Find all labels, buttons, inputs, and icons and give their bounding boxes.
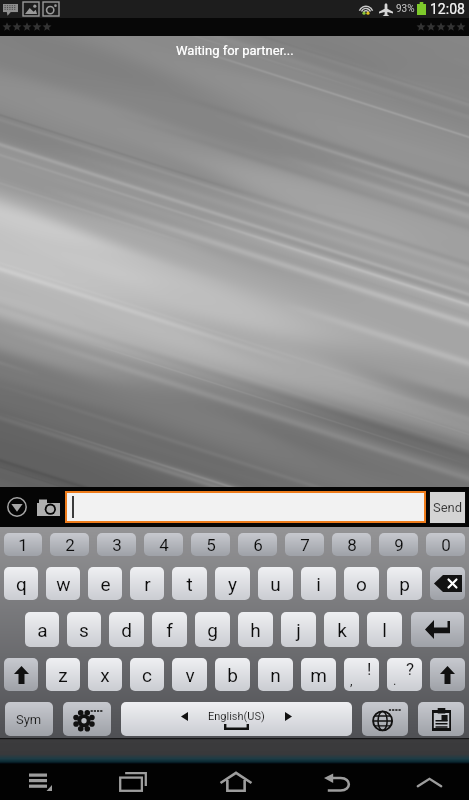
button[interactable]: 8 xyxy=(332,533,371,556)
staticText: a xyxy=(37,619,48,641)
button[interactable]: Home xyxy=(186,764,286,800)
button[interactable]: Space xyxy=(121,702,352,736)
staticText: q xyxy=(16,573,27,595)
staticText: 3 xyxy=(112,535,122,555)
staticText: 1 xyxy=(18,535,28,555)
staticText: p xyxy=(399,573,410,595)
button[interactable]: 1 xyxy=(4,533,42,556)
button[interactable]: Hide keyboard xyxy=(390,764,469,800)
button[interactable] xyxy=(67,493,424,521)
button[interactable]: g xyxy=(195,612,230,647)
staticText: o xyxy=(356,573,367,595)
button[interactable]: j xyxy=(281,612,316,647)
staticText: j xyxy=(296,619,301,641)
staticText: ? xyxy=(406,659,415,679)
staticText: w xyxy=(56,573,71,595)
staticText: v xyxy=(185,664,195,686)
button[interactable]: e xyxy=(88,567,122,600)
button[interactable]: 6 xyxy=(238,533,277,556)
button[interactable]: u xyxy=(258,567,293,600)
button[interactable]: v xyxy=(172,658,207,691)
staticText: 8 xyxy=(347,535,357,555)
button[interactable]: Send xyxy=(430,492,465,523)
staticText: g xyxy=(207,619,218,641)
button[interactable]: m xyxy=(301,658,336,691)
button[interactable]: x xyxy=(88,658,122,691)
staticText: i xyxy=(316,573,321,595)
button[interactable]: f xyxy=(152,612,187,647)
button[interactable]: p xyxy=(387,567,422,600)
staticText: 9 xyxy=(394,535,404,555)
staticText: m xyxy=(310,664,327,686)
staticText: r xyxy=(144,573,151,595)
button[interactable]: 7 xyxy=(285,533,324,556)
button[interactable]: Menu xyxy=(0,764,80,800)
button[interactable]: Camera xyxy=(36,490,61,524)
button[interactable]: s xyxy=(67,612,101,647)
button[interactable]: c xyxy=(130,658,164,691)
button[interactable]: Change language xyxy=(362,702,408,736)
staticText: Send xyxy=(433,500,463,515)
button[interactable]: 9 xyxy=(379,533,418,556)
staticText: 12:08 xyxy=(430,1,465,17)
button[interactable]: 2 xyxy=(50,533,89,556)
staticText: c xyxy=(142,664,152,686)
button[interactable]: r xyxy=(130,567,164,600)
button[interactable]: Shift xyxy=(430,658,465,691)
button[interactable]: n xyxy=(258,658,293,691)
button[interactable]: t xyxy=(172,567,207,600)
button[interactable]: l xyxy=(367,612,402,647)
button[interactable]: 3 xyxy=(97,533,136,556)
staticText: x xyxy=(100,664,110,686)
staticText: k xyxy=(337,619,347,641)
staticText: Waiting for partner... xyxy=(176,43,294,58)
button[interactable]: i xyxy=(301,567,336,600)
staticText: Sym xyxy=(16,712,42,727)
button[interactable]: Back xyxy=(290,764,385,800)
button[interactable]: d xyxy=(109,612,144,647)
staticText: ! xyxy=(367,659,372,679)
staticText: b xyxy=(227,664,238,686)
button[interactable]: Shift xyxy=(4,658,38,691)
staticText: 7 xyxy=(300,535,310,555)
staticText: 0 xyxy=(441,535,451,555)
staticText: , xyxy=(350,673,353,688)
button[interactable]: Comma xyxy=(344,658,379,691)
staticText: 5 xyxy=(206,535,216,555)
button[interactable]: 5 xyxy=(191,533,230,556)
staticText: y xyxy=(228,573,237,595)
button[interactable]: z xyxy=(46,658,80,691)
staticText: e xyxy=(100,573,111,595)
button[interactable]: Sym xyxy=(5,702,53,736)
staticText: . xyxy=(393,673,397,688)
button[interactable]: Settings xyxy=(63,702,111,736)
staticText: 93% xyxy=(396,3,415,15)
staticText: t xyxy=(186,573,193,595)
button[interactable]: Clipboard xyxy=(418,702,464,736)
button[interactable]: Period xyxy=(387,658,422,691)
button[interactable]: o xyxy=(344,567,379,600)
button[interactable]: Backspace xyxy=(430,567,465,600)
button[interactable]: a xyxy=(25,612,59,647)
staticText: z xyxy=(58,664,68,686)
staticText: l xyxy=(382,619,387,641)
button[interactable]: 4 xyxy=(144,533,183,556)
button[interactable]: Show options xyxy=(2,490,31,524)
staticText: s xyxy=(79,619,89,641)
button[interactable]: k xyxy=(324,612,359,647)
button[interactable]: w xyxy=(46,567,80,600)
staticText: 6 xyxy=(253,535,263,555)
staticText: d xyxy=(121,619,132,641)
button[interactable]: Enter xyxy=(411,612,464,647)
staticText: n xyxy=(270,664,281,686)
staticText: h xyxy=(250,619,261,641)
button[interactable]: q xyxy=(4,567,38,600)
button[interactable]: b xyxy=(215,658,250,691)
staticText: f xyxy=(166,619,173,641)
staticText: u xyxy=(270,573,281,595)
button[interactable]: 0 xyxy=(426,533,465,556)
staticText: 2 xyxy=(65,535,75,555)
button[interactable]: h xyxy=(238,612,273,647)
button[interactable]: Recent apps xyxy=(85,764,180,800)
button[interactable]: y xyxy=(215,567,250,600)
